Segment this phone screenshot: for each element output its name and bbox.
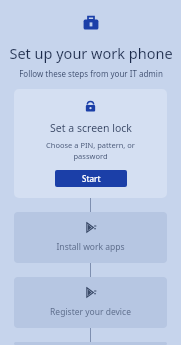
- button[interactable]: Set a screen lock: [14, 89, 167, 198]
- button[interactable]: Start: [55, 170, 127, 187]
- button[interactable]: Install work apps: [14, 212, 167, 263]
- staticText: Follow these steps from your IT admin: [19, 68, 163, 79]
- staticText: Start: [82, 173, 101, 184]
- other: Install work apps: [84, 221, 97, 234]
- staticText: Register your device: [50, 306, 131, 318]
- staticText: Install work apps: [56, 241, 125, 253]
- other: Register your device: [84, 286, 97, 299]
- staticText: Set up your work phone: [9, 43, 173, 63]
- button[interactable]: Register your device: [14, 277, 167, 328]
- staticText: Set a screen lock: [50, 121, 132, 135]
- staticText: Choose a PIN, pattern, or password: [38, 140, 143, 161]
